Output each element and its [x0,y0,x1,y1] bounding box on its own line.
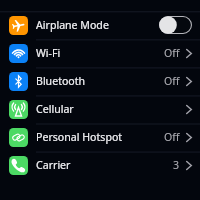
staticText: Carrier [36,158,71,172]
button[interactable]: Wi-Fi [0,39,200,67]
staticText: Wi-Fi [36,46,61,60]
staticText: 3 [173,158,180,172]
button[interactable]: Carrier [0,151,200,179]
staticText: Cellular [36,102,74,116]
button[interactable]: Cellular [0,95,200,123]
button[interactable]: Airplane Mode [0,11,200,39]
staticText: Off [164,74,180,88]
button[interactable]: Personal Hotspot [0,123,200,151]
staticText: Personal Hotspot [36,130,123,144]
staticText: Off [164,130,180,144]
staticText: Bluetooth [36,74,86,88]
staticText: Airplane Mode [36,18,109,32]
button[interactable]: Bluetooth [0,67,200,95]
button[interactable]: Airplane Mode switch, off [159,16,192,34]
staticText: Off [164,46,180,60]
